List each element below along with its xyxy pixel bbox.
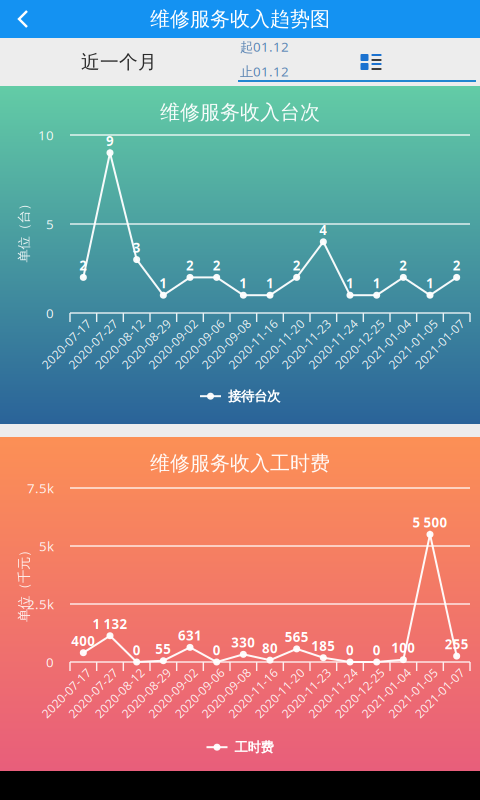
staticText: 维修服务收入工时费 [150,451,330,476]
staticText: 止01.12 [240,62,289,80]
staticText: 2021-01-04 [354,336,418,352]
staticText: 接待台次 [228,388,280,404]
staticText: 5k [39,537,54,555]
staticText: 2020-11-24 [301,685,365,701]
button[interactable]: 返回 [10,4,44,34]
staticText: 400 [71,632,95,650]
button[interactable]: 切换图表视图 [352,38,390,86]
staticText: 5 [46,215,54,233]
staticText: 80 [262,639,278,657]
staticText: 2021-01-05 [381,336,445,352]
staticText: 2020-09-06 [168,336,232,352]
staticText: 2.5k [27,595,54,613]
staticText: 0 [46,304,54,322]
staticText: 2 [399,256,407,274]
staticText: 2020-09-08 [194,685,258,701]
staticText: 2020-07-27 [61,336,125,352]
staticText: 1 [373,274,381,292]
staticText: 0 [46,653,54,671]
staticText: 2020-08-12 [88,685,152,701]
staticText: 维修服务收入趋势图 [150,7,330,31]
staticText: 3 [133,239,141,256]
staticText: 2021-01-05 [381,685,445,701]
staticText: 2 [293,256,301,274]
staticText: 1 [266,274,274,292]
staticText: 单位（台） [0,222,56,238]
staticText: 起01.12 [240,38,289,55]
staticText: 330 [231,633,255,651]
staticText: 2020-12-25 [328,336,392,352]
staticText: 1 [346,274,354,292]
staticText: 565 [285,628,309,646]
staticText: 2020-09-02 [141,336,205,352]
staticText: 2020-11-23 [274,336,338,352]
staticText: 0 [346,641,354,659]
staticText: 1 [159,274,167,292]
staticText: 631 [178,626,202,644]
staticText: 1 [239,274,247,292]
staticText: 1 [426,274,434,292]
staticText: 2 [79,256,87,274]
staticText: 185 [311,637,335,655]
staticText: 0 [133,641,141,659]
staticText: 2020-11-20 [248,336,312,352]
staticText: 2020-07-27 [61,685,125,701]
staticText: 2020-12-25 [328,685,392,701]
staticText: 2021-01-04 [354,685,418,701]
staticText: 2021-01-07 [408,336,472,352]
button[interactable]: 近一个月 [0,41,238,83]
staticText: 4 [319,221,327,239]
staticText: 5 500 [412,513,447,531]
staticText: 2 [213,256,221,274]
staticText: 2020-07-17 [34,336,98,352]
staticText: 2020-11-16 [221,336,285,352]
staticText: 2020-09-02 [141,685,205,701]
staticText: 2020-11-24 [301,336,365,352]
staticText: 7.5k [27,479,54,497]
staticText: 100 [391,639,415,656]
staticText: 单位（千元） [0,575,63,591]
staticText: 255 [445,635,469,653]
staticText: 10 [38,126,54,144]
staticText: 2020-11-20 [248,685,312,701]
staticText: 2020-08-29 [114,336,178,352]
staticText: 0 [213,641,221,659]
staticText: 维修服务收入台次 [160,100,320,125]
staticText: 2020-09-06 [168,685,232,701]
staticText: 工时费 [234,739,273,755]
staticText: 2020-08-29 [114,685,178,701]
staticText: 2020-09-08 [194,336,258,352]
staticText: 2021-01-07 [408,685,472,701]
staticText: 2 [453,256,461,274]
staticText: 0 [373,641,381,659]
staticText: 近一个月 [81,50,157,73]
button[interactable]: 选择日期 [238,38,352,86]
staticText: 2020-08-12 [88,336,152,352]
staticText: 2 [186,256,194,274]
staticText: 55 [155,640,171,658]
staticText: 1 132 [92,615,127,633]
staticText: 2020-11-16 [221,685,285,701]
staticText: 2020-07-17 [34,685,98,701]
staticText: 2020-11-23 [274,685,338,701]
staticText: 9 [106,132,114,150]
